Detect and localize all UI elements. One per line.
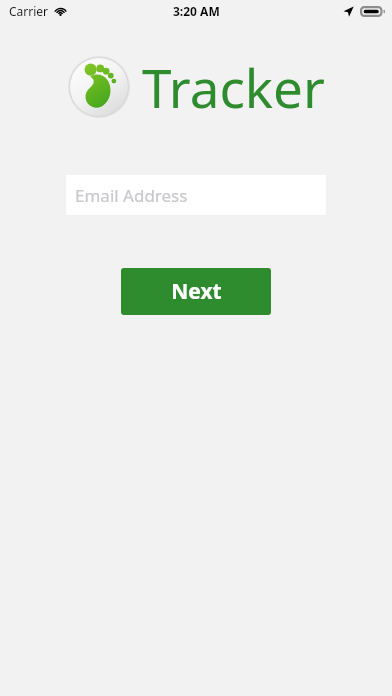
staticText: 3:20 AM	[173, 3, 220, 19]
other: Wi-Fi signal	[54, 6, 67, 16]
staticText: Email Address	[75, 184, 188, 207]
staticText: Carrier	[9, 3, 49, 19]
staticText: Tracker	[142, 51, 325, 123]
button[interactable]: Email Address	[66, 175, 326, 215]
staticText: Next	[171, 277, 222, 306]
other: Battery full	[360, 6, 385, 17]
other: Location services active	[343, 6, 354, 17]
button[interactable]: Next	[121, 268, 271, 315]
